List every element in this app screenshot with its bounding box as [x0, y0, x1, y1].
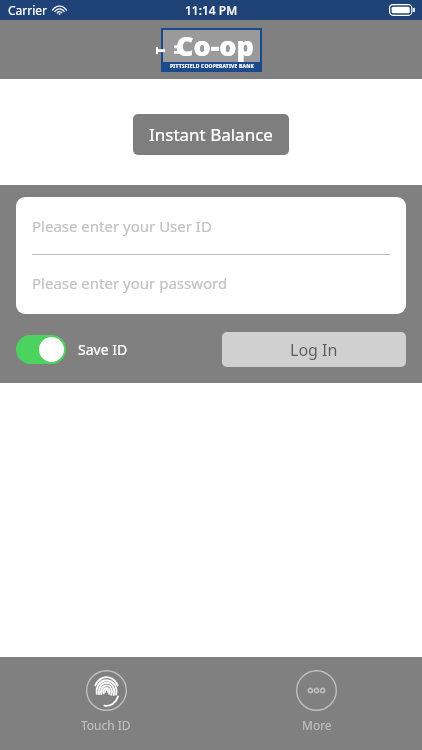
- staticText: Carrier: [8, 2, 48, 18]
- staticText: Co-op: [176, 27, 254, 64]
- staticText: PITTSFIELD COOPERATIVE BANK: [170, 63, 254, 70]
- staticText: THE: [150, 39, 190, 54]
- staticText: Instant Balance: [149, 123, 273, 146]
- button[interactable]: Please enter your User ID: [16, 197, 406, 255]
- button[interactable]: Touch ID: [69, 668, 143, 735]
- staticText: Log In: [290, 339, 338, 361]
- staticText: More: [302, 717, 332, 733]
- staticText: Touch ID: [81, 717, 131, 733]
- button[interactable]: Log In: [222, 332, 406, 367]
- staticText: 11:14 PM: [185, 2, 238, 18]
- button[interactable]: Save ID: [16, 335, 128, 364]
- button[interactable]: Please enter your password: [16, 255, 406, 311]
- staticText: Please enter your password: [32, 273, 228, 293]
- staticText: Please enter your User ID: [32, 216, 212, 236]
- button[interactable]: Instant Balance: [133, 114, 289, 155]
- staticText: Save ID: [78, 340, 128, 359]
- button[interactable]: THE: [163, 30, 260, 70]
- button[interactable]: More: [284, 668, 349, 735]
